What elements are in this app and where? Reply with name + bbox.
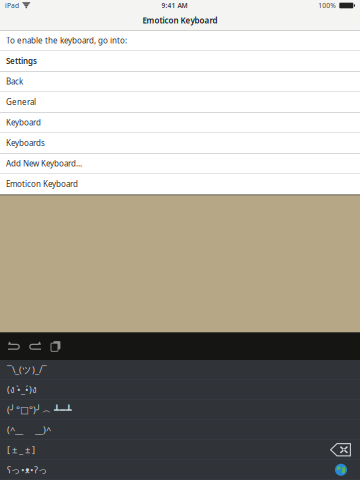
button[interactable]: Keyboards: [0, 133, 360, 153]
button[interactable]: General: [0, 92, 360, 112]
staticText: 100%: [318, 1, 336, 10]
staticText: 9:41 AM: [161, 1, 187, 10]
button[interactable]: (ง •̀_•́)ง: [0, 380, 360, 400]
button[interactable]: Keyboard: [0, 112, 360, 133]
staticText: [ ± _ ± ]: [7, 444, 35, 456]
button[interactable]: Back: [0, 71, 360, 92]
staticText: (^__ __)^: [7, 424, 51, 436]
staticText: Emoticon Keyboard: [142, 15, 217, 26]
staticText: Keyboard: [6, 117, 41, 128]
button[interactable]: [ ± _ ± ]: [0, 440, 360, 460]
button[interactable]: Settings: [0, 51, 360, 71]
staticText: (ง •̀_•́)ง: [7, 382, 37, 397]
staticText: To enable the keyboard, go into:: [6, 35, 127, 46]
button[interactable]: (╯°□°)╯︵ ┻━┻: [0, 400, 360, 420]
staticText: Back: [6, 76, 23, 87]
button[interactable]: Undo: [7, 341, 20, 352]
button[interactable]: Copy: [51, 341, 60, 351]
button[interactable]: ¯\_(ツ)_/¯: [0, 360, 360, 380]
staticText: ʕっ•ᴥ•ʔっ: [7, 463, 48, 476]
button[interactable]: Add New Keyboard...: [0, 153, 360, 174]
staticText: ¯\_(ツ)_/¯: [7, 364, 47, 376]
button[interactable]: ʕっ•ᴥ•ʔっ: [0, 460, 360, 480]
staticText: (╯°□°)╯︵ ┻━┻: [7, 403, 72, 416]
staticText: Settings: [6, 56, 37, 66]
button[interactable]: Redo: [29, 341, 42, 352]
button[interactable]: To enable the keyboard, go into:: [0, 30, 360, 51]
staticText: Emoticon Keyboard: [6, 179, 78, 189]
staticText: iPad: [5, 1, 19, 10]
button[interactable]: Emoticon Keyboard: [0, 174, 360, 194]
button[interactable]: (^__ __)^: [0, 420, 360, 440]
staticText: Add New Keyboard...: [6, 158, 82, 169]
staticText: General: [6, 97, 36, 107]
staticText: Keyboards: [6, 138, 45, 148]
